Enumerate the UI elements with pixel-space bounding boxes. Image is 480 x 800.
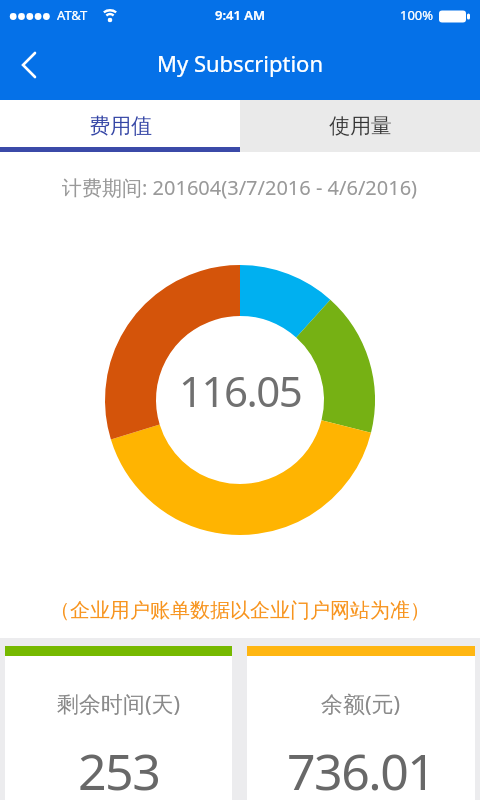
staticText: 116.05	[179, 362, 302, 419]
button[interactable]: 剩余时间(天)	[5, 646, 232, 800]
staticText: 9:41 AM	[215, 6, 266, 24]
button[interactable]: 费用值	[0, 100, 240, 152]
staticText: 使用量	[329, 113, 392, 139]
staticText: 100%	[400, 6, 434, 24]
button[interactable]: 余额(元)	[247, 646, 475, 800]
staticText: 736.01	[287, 737, 435, 800]
staticText: My Subscription	[157, 48, 324, 78]
staticText: AT&T	[57, 6, 88, 24]
staticText: 计费期间: 201604(3/7/2016 - 4/6/2016)	[62, 174, 418, 201]
button[interactable]: 使用量	[240, 100, 480, 152]
staticText: 余额(元)	[321, 688, 401, 718]
staticText: 剩余时间(天)	[57, 688, 181, 718]
button[interactable]	[0, 37, 56, 93]
staticText: 费用值	[89, 113, 152, 139]
staticText: （企业用户账单数据以企业门户网站为准）	[50, 598, 430, 623]
staticText: 253	[78, 737, 160, 800]
